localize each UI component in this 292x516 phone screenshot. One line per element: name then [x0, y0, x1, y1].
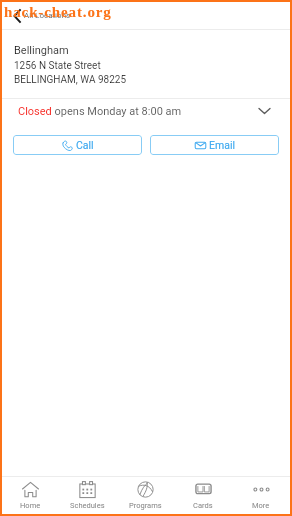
button[interactable]: Schedules [59, 477, 116, 514]
staticText: 1256 N State Street [14, 60, 101, 72]
button[interactable]: Back [13, 2, 71, 29]
staticText: Call [76, 139, 94, 151]
staticText: Email [209, 139, 235, 151]
staticText: Cards [193, 501, 213, 510]
staticText: hack-cheat.org [4, 4, 112, 21]
staticText: Closed opens Monday at 8:00 am [18, 105, 182, 118]
button[interactable]: Closed opens Monday at 8:00 am [2, 99, 290, 123]
button[interactable]: More [232, 477, 290, 514]
staticText: Programs [129, 501, 162, 510]
button[interactable]: Cards [174, 477, 232, 514]
staticText: Schedules [70, 501, 105, 510]
button[interactable]: Programs [116, 477, 174, 514]
button[interactable]: Call [13, 135, 142, 155]
staticText: All Locations [24, 11, 71, 20]
other: Back [13, 9, 21, 23]
button[interactable]: Home [2, 477, 59, 514]
staticText: More [252, 501, 270, 510]
staticText: Bellingham [14, 44, 69, 57]
staticText: Home [20, 501, 41, 510]
button[interactable]: Email [150, 135, 279, 155]
staticText: BELLINGHAM, WA 98225 [14, 74, 127, 86]
